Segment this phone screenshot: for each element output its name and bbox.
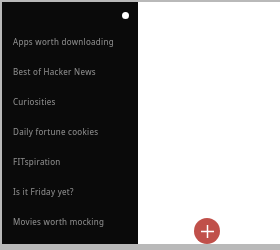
staticText: Best of Hacker News [13, 66, 96, 77]
staticText: Is it Friday yet? [13, 186, 74, 197]
button[interactable]: Movies worth mocking [2, 206, 138, 236]
button[interactable]: Daily fortune cookies [2, 116, 138, 146]
staticText: Daily fortune cookies [13, 126, 99, 137]
button[interactable]: Add [194, 218, 220, 244]
button[interactable]: Apps worth downloading [2, 26, 138, 56]
staticText: Curiosities [13, 96, 56, 107]
staticText: FITspiration [13, 156, 61, 167]
staticText: Movies worth mocking [13, 216, 105, 227]
button[interactable]: Curiosities [2, 86, 138, 116]
button[interactable]: FITspiration [2, 146, 138, 176]
staticText: Apps worth downloading [13, 36, 114, 47]
button[interactable]: Is it Friday yet? [2, 176, 138, 206]
button[interactable]: Best of Hacker News [2, 56, 138, 86]
